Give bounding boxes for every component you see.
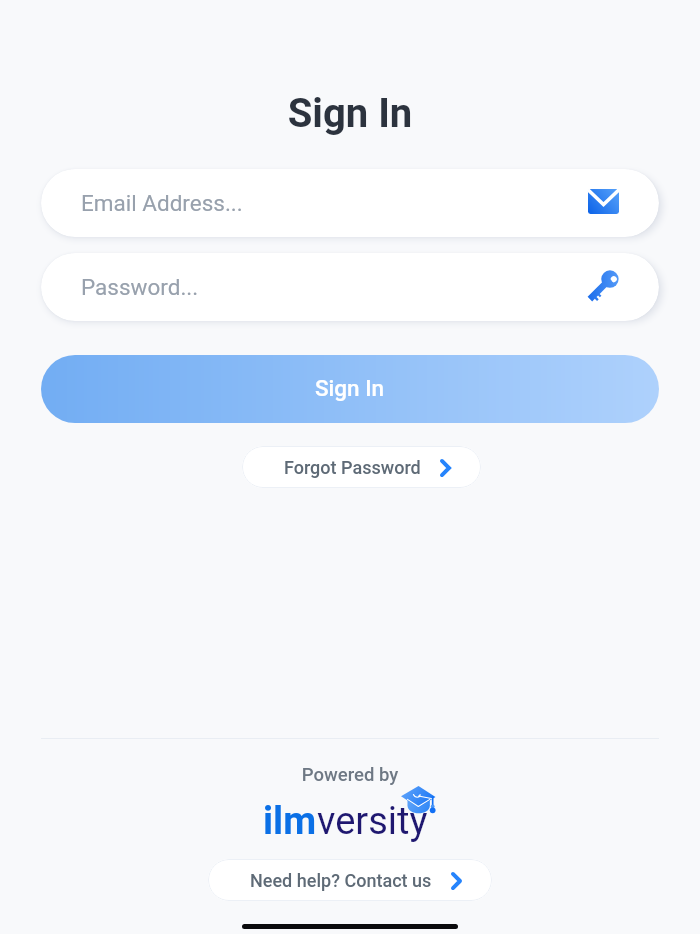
button[interactable]: Password: [41, 253, 659, 321]
staticText: versity: [317, 799, 428, 844]
other: Email: [588, 189, 619, 214]
staticText: Password...: [81, 274, 199, 300]
button[interactable]: Email: [41, 169, 659, 237]
other: Password: [586, 269, 620, 303]
staticText: Email Address...: [81, 190, 243, 216]
staticText: ilm: [263, 799, 317, 844]
button[interactable]: Need help? Contact us: [208, 859, 492, 901]
staticText: Sign In: [315, 375, 385, 401]
button[interactable]: Sign In: [41, 355, 659, 423]
staticText: Powered by: [0, 764, 700, 786]
staticText: Need help? Contact us: [250, 870, 432, 891]
button[interactable]: Forgot Password: [242, 446, 481, 488]
staticText: Sign In: [0, 90, 700, 137]
staticText: Forgot Password: [284, 457, 421, 478]
